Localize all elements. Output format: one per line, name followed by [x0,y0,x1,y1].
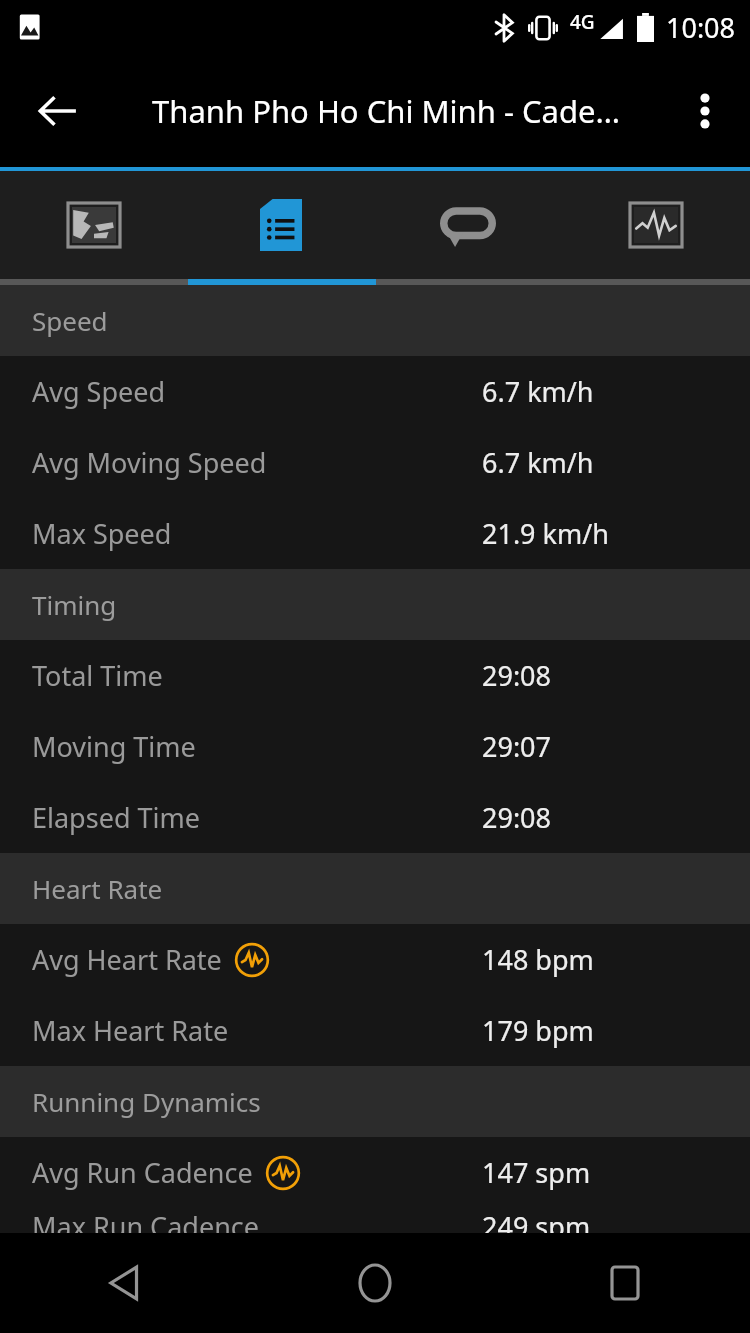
button[interactable]: Charts [562,171,750,279]
staticText: 249 spm [482,1208,591,1233]
button[interactable]: Max Speed [0,498,750,569]
button[interactable]: Avg Heart Rate [0,924,750,995]
button[interactable]: Max Heart Rate [0,995,750,1066]
button[interactable]: Avg Moving Speed [0,427,750,498]
staticText: 29:07 [482,728,552,765]
staticText: 4G [570,9,595,35]
button[interactable]: Recent apps [577,1235,673,1331]
button[interactable]: Laps [374,171,562,279]
staticText: 147 spm [482,1154,591,1191]
button[interactable]: Moving Time [0,711,750,782]
staticText: 10:08 [666,9,736,46]
button[interactable]: More options [670,76,740,146]
button[interactable]: Back [20,74,94,148]
button[interactable]: Avg Speed [0,356,750,427]
staticText: Heart Rate [32,871,163,906]
staticText: 6.7 km/h [482,373,594,410]
button[interactable]: Home [327,1235,423,1331]
staticText: 179 bpm [482,1012,594,1049]
button[interactable]: Elapsed Time [0,782,750,853]
staticText: Total Time [32,657,163,694]
button[interactable]: Total Time [0,640,750,711]
button[interactable]: Details [187,171,374,279]
staticText: Moving Time [32,728,196,765]
staticText: Avg Heart Rate [32,941,222,978]
button[interactable]: Back [77,1235,173,1331]
staticText: Avg Moving Speed [32,444,267,481]
button[interactable]: Map [0,171,187,279]
staticText: Timing [32,587,117,622]
staticText: 29:08 [482,657,552,694]
button[interactable]: Avg Run Cadence [0,1137,750,1208]
staticText: Speed [32,303,108,338]
staticText: Max Run Cadence [32,1208,260,1233]
button[interactable]: Max Run Cadence [0,1208,750,1233]
staticText: 29:08 [482,799,552,836]
staticText: Running Dynamics [32,1084,261,1119]
staticText: Avg Run Cadence [32,1154,253,1191]
staticText: Max Heart Rate [32,1012,229,1049]
staticText: 148 bpm [482,941,594,978]
staticText: 6.7 km/h [482,444,594,481]
staticText: Thanh Pho Ho Chi Minh - Cade… [152,90,621,132]
staticText: Max Speed [32,515,172,552]
staticText: Avg Speed [32,373,166,410]
staticText: Elapsed Time [32,799,200,836]
staticText: 21.9 km/h [482,515,609,552]
